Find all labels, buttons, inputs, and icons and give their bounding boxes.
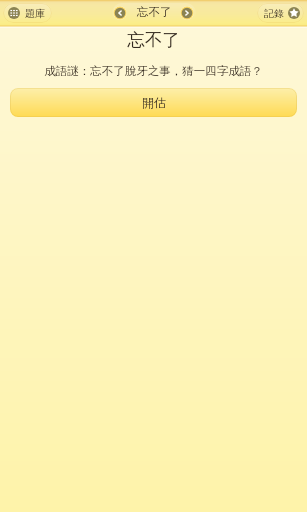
button[interactable]: 忘不了 [133, 3, 175, 20]
button[interactable]: Previous [113, 6, 127, 20]
staticText: 忘不了 [137, 5, 172, 19]
staticText: 忘不了 [127, 29, 180, 51]
button[interactable]: 題庫 [3, 3, 52, 23]
staticText: 開估 [142, 95, 166, 110]
other: 記錄 [288, 7, 300, 19]
button[interactable]: 記錄 [257, 3, 304, 23]
button[interactable]: Next [180, 6, 194, 20]
other: 題庫 [8, 7, 20, 19]
staticText: 題庫 [25, 7, 45, 20]
staticText: 記錄 [264, 7, 284, 20]
staticText: 成語謎：忘不了脫牙之事，猜一四字成語？ [44, 64, 263, 78]
button[interactable]: 開估 [10, 88, 297, 117]
